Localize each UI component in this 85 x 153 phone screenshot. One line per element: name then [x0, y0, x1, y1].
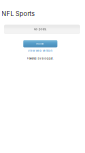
staticText: Powered by Blogger. [27, 57, 54, 60]
button[interactable]: Powered by Blogger. [27, 56, 54, 60]
staticText: No posts. [34, 28, 47, 31]
button[interactable]: Home [23, 40, 57, 47]
staticText: Home [36, 42, 44, 45]
staticText: View web version [28, 49, 53, 52]
staticText: NFL Sports [1, 10, 34, 17]
button[interactable]: View web version [28, 49, 53, 53]
